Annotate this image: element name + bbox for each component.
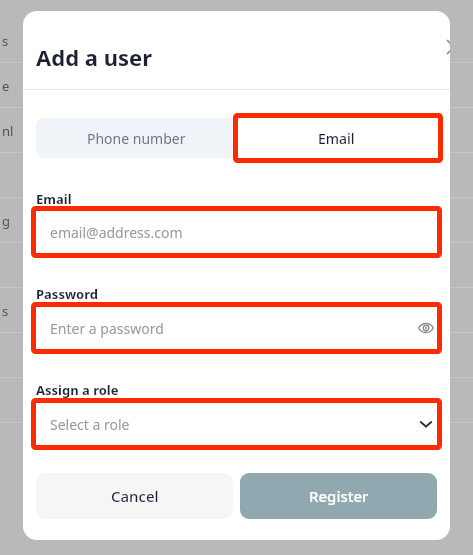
staticText: Password (36, 285, 98, 303)
staticText: Email (36, 190, 72, 208)
button[interactable]: Select a role (36, 403, 437, 445)
button[interactable]: Show password (405, 307, 447, 349)
staticText: email@address.com (50, 223, 183, 242)
staticText: e (2, 77, 10, 95)
staticText: Register (309, 486, 369, 506)
button[interactable]: Email (236, 118, 437, 158)
staticText: g (2, 212, 10, 230)
button[interactable]: Phone number (36, 118, 236, 158)
staticText: Assign a role (36, 381, 119, 399)
button[interactable]: Enter a password (36, 307, 437, 349)
button[interactable]: email@address.com (36, 211, 437, 253)
staticText: s (2, 32, 9, 50)
button[interactable]: Cancel (36, 473, 233, 519)
staticText: Phone number (87, 129, 186, 148)
button[interactable]: Register (240, 473, 437, 519)
staticText: s (2, 302, 9, 320)
other: Open role list (405, 403, 447, 445)
staticText: Enter a password (50, 319, 164, 338)
staticText: Email (318, 129, 355, 148)
staticText: Add a user (36, 42, 152, 72)
button[interactable]: Close (440, 33, 450, 61)
staticText: Select a role (50, 415, 130, 434)
staticText: nl (2, 122, 14, 140)
staticText: Cancel (111, 486, 159, 506)
